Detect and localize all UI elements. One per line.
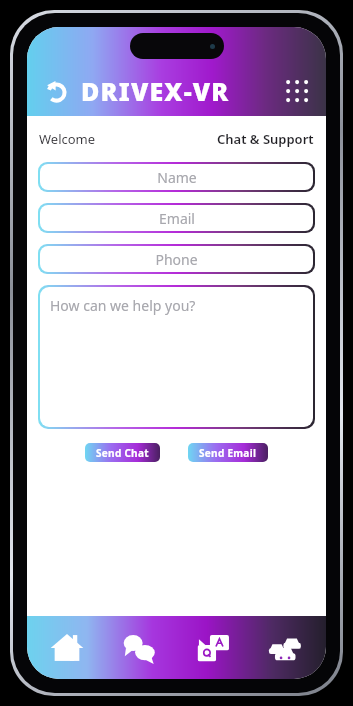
button[interactable]: Chat [103, 616, 176, 679]
button[interactable]: Back [39, 74, 73, 108]
staticText: Email [159, 209, 195, 228]
button[interactable]: Send Chat [85, 443, 160, 462]
button[interactable]: Home [31, 616, 103, 679]
button[interactable]: Name [40, 164, 313, 190]
button[interactable]: Phone [40, 246, 313, 272]
staticText: How can we help you? [50, 296, 196, 315]
staticText: Name [157, 168, 197, 187]
button[interactable]: Questions and answers [176, 616, 249, 679]
button[interactable]: Email [40, 205, 313, 231]
staticText: Send Chat [96, 446, 149, 460]
button[interactable]: How can we help you? [40, 287, 313, 427]
staticText: Phone [155, 250, 198, 269]
button[interactable]: Menu [280, 74, 314, 108]
button[interactable]: Traffic [249, 616, 322, 679]
staticText: Welcome [39, 130, 96, 148]
staticText: Send Email [199, 446, 257, 460]
staticText: DRIVEX-VR [81, 74, 230, 108]
button[interactable]: Send Email [188, 443, 268, 462]
staticText: Chat & Support [217, 130, 314, 148]
